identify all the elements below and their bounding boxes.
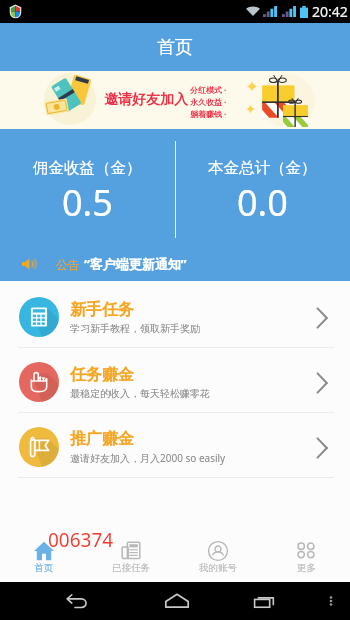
staticText: 我的账号 xyxy=(199,562,237,573)
staticText: 0.0 xyxy=(237,178,288,227)
staticText: “客户端更新通知” xyxy=(84,255,187,273)
staticText: 佣金收益（金） xyxy=(33,158,142,178)
staticText: 0.5 xyxy=(62,178,113,227)
staticText: 首页 xyxy=(34,562,53,573)
staticText: 邀请好友加入，月入2000 so easily xyxy=(70,451,226,465)
staticText: 20:42 xyxy=(312,2,348,21)
staticText: 学习新手教程，领取新手奖励 xyxy=(70,322,200,335)
staticText: 永久收益 · xyxy=(190,96,227,107)
staticText: 公告 xyxy=(56,257,80,272)
other: 公告 xyxy=(21,256,37,272)
other: More options xyxy=(324,594,338,608)
button[interactable]: 推广赚金 xyxy=(0,413,350,477)
button[interactable]: 更多 xyxy=(262,541,350,573)
staticText: 006374 xyxy=(48,527,114,553)
staticText: 推广赚金 xyxy=(70,429,134,449)
button[interactable]: 我的账号 xyxy=(174,541,262,573)
staticText: 任务赚金 xyxy=(70,365,134,385)
staticText: 分红模式 · xyxy=(190,84,227,95)
button[interactable]: 新手任务 xyxy=(0,283,350,347)
other: Home xyxy=(163,587,191,615)
staticText: 最稳定的收入，每天轻松赚零花 xyxy=(70,387,210,400)
button[interactable]: 公告 xyxy=(21,255,187,273)
button[interactable]: 邀请好友加入 xyxy=(0,71,350,129)
staticText: 躺着赚钱 · xyxy=(190,108,227,119)
staticText: 更多 xyxy=(297,562,316,573)
button[interactable]: 首页 xyxy=(0,541,87,573)
staticText: 首页 xyxy=(157,36,193,59)
staticText: 本金总计（金） xyxy=(208,158,317,178)
staticText: 新手任务 xyxy=(70,300,134,320)
other: Back xyxy=(63,588,89,614)
button[interactable]: 任务赚金 xyxy=(0,348,350,412)
other: Recent apps xyxy=(252,588,278,614)
staticText: 邀请好友加入 xyxy=(104,91,188,109)
button[interactable]: 已接任务 xyxy=(87,541,174,573)
staticText: 已接任务 xyxy=(112,562,150,573)
